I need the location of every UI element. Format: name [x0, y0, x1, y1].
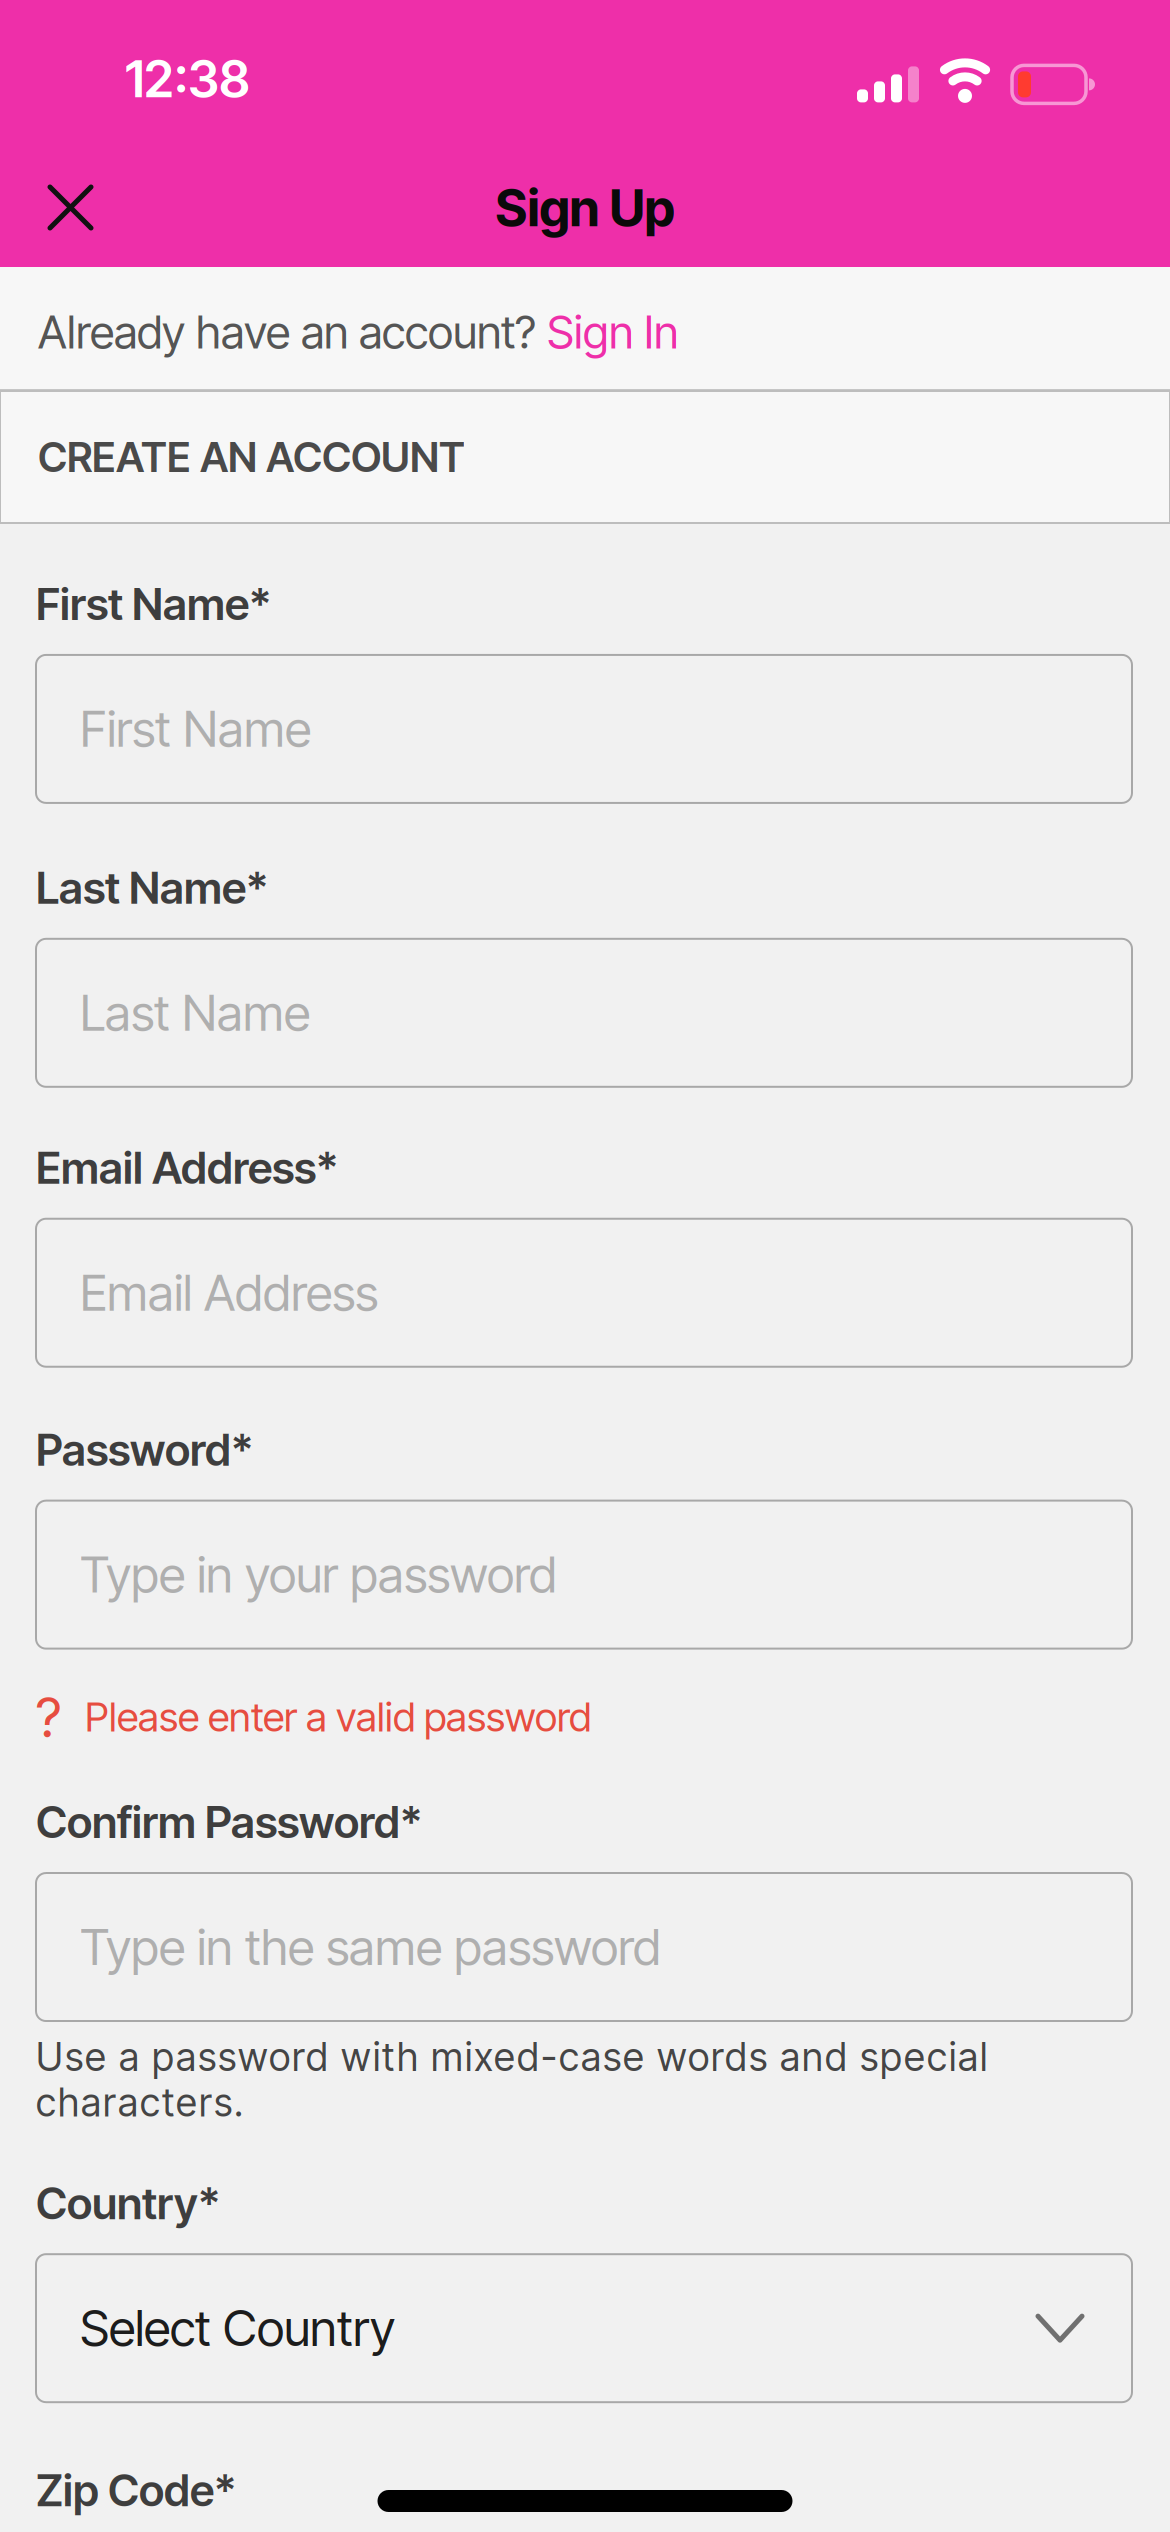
button[interactable]: Already have an account?	[0, 267, 1170, 389]
button[interactable]: Select Country	[36, 2254, 1132, 2402]
staticText: Type in the same password	[80, 1918, 661, 1976]
staticText: 12:38	[125, 49, 250, 109]
button[interactable]: Email Address	[36, 1219, 1132, 1367]
staticText: Confirm Password*	[36, 1796, 422, 1848]
staticText: characters.	[36, 2080, 243, 2125]
staticText: Select Country	[80, 2299, 395, 2357]
staticText: Sign Up	[495, 178, 674, 238]
staticText: Sign In	[547, 305, 678, 359]
staticText: Email Address*	[36, 1142, 338, 1194]
button[interactable]: Type in your password	[36, 1501, 1132, 1649]
staticText: First Name*	[36, 578, 271, 630]
staticText: Already have an account?	[38, 305, 547, 359]
button[interactable]: First Name	[36, 655, 1132, 803]
staticText: First Name	[80, 700, 311, 758]
staticText: Last Name*	[36, 862, 268, 914]
staticText: Email Address	[80, 1264, 378, 1322]
staticText: Type in your password	[80, 1545, 557, 1604]
staticText: Last Name	[80, 984, 310, 1042]
button[interactable]: Last Name	[36, 939, 1132, 1087]
staticText: Use a password with mixed-case words and…	[36, 2034, 987, 2080]
button[interactable]: Close	[0, 0, 91, 228]
staticText: CREATE AN ACCOUNT	[38, 433, 465, 481]
staticText: Country*	[36, 2177, 220, 2229]
button[interactable]: CREATE AN ACCOUNT	[0, 391, 1170, 523]
staticText: Please enter a valid password	[85, 1693, 591, 1740]
button[interactable]: Type in the same password	[36, 1873, 1132, 2021]
staticText: Zip Code*	[36, 2464, 236, 2516]
staticText: ?	[36, 1685, 61, 1749]
staticText: Password*	[36, 1424, 253, 1476]
